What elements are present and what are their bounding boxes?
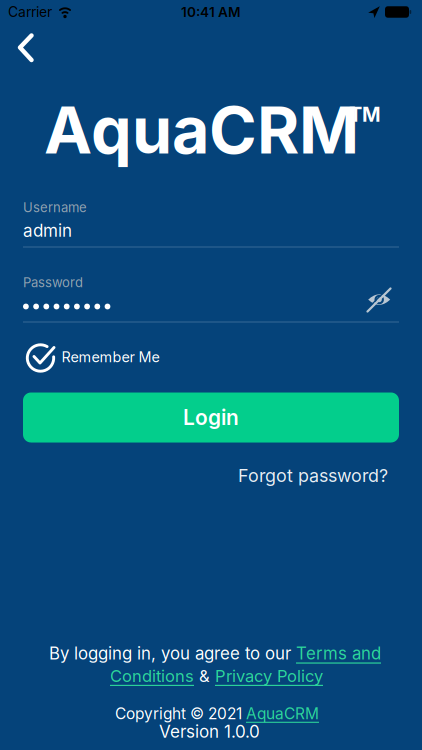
staticText: Username <box>23 200 87 215</box>
staticText: AquaCRM <box>246 704 319 723</box>
staticText: Version 1.0.0 <box>159 721 260 742</box>
staticText: Remember Me <box>61 348 159 366</box>
staticText: Terms and <box>296 643 381 664</box>
staticText: Password <box>23 275 83 290</box>
button[interactable]: Forgot password? <box>238 465 388 486</box>
button[interactable]: Privacy Policy <box>215 666 323 686</box>
staticText: Login <box>183 405 239 430</box>
staticText: TM <box>349 102 381 127</box>
button[interactable]: Conditions <box>110 666 194 686</box>
button[interactable]: Remember Me <box>25 339 159 375</box>
staticText: Forgot password? <box>238 465 388 486</box>
staticText: Privacy Policy <box>215 666 323 686</box>
staticText: & <box>194 666 215 686</box>
staticText: 10:41 AM <box>181 4 241 20</box>
staticText: AquaCRM <box>44 91 359 169</box>
staticText: Carrier <box>8 4 52 20</box>
button[interactable]: AquaCRM <box>246 704 319 723</box>
staticText: Copyright © 2021 <box>115 704 246 723</box>
button[interactable] <box>357 278 401 322</box>
button[interactable]: Login <box>23 392 399 442</box>
staticText: By logging in, you agree to our <box>49 643 296 664</box>
button[interactable] <box>0 27 44 68</box>
button[interactable]: Terms and <box>296 643 381 664</box>
staticText: admin <box>23 220 72 241</box>
staticText: Conditions <box>110 666 194 686</box>
